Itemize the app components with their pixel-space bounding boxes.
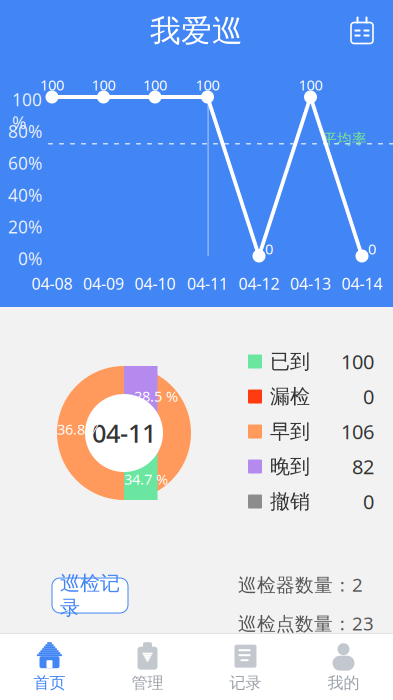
staticText: 巡检点数量：23 — [238, 611, 374, 636]
staticText: 100 — [298, 75, 322, 94]
button[interactable]: 管理 — [98, 637, 196, 699]
button[interactable]: 日历 — [349, 15, 393, 47]
button[interactable]: 首页 — [0, 637, 98, 699]
staticText: 平均率 — [322, 130, 367, 148]
staticText: 管理 — [131, 673, 163, 693]
button[interactable]: 记录 — [196, 637, 294, 699]
staticText: 100 — [143, 75, 167, 94]
staticText: 82 — [352, 453, 374, 480]
staticText: 早到 — [270, 419, 310, 444]
staticText: 已到 — [270, 349, 310, 374]
button[interactable]: 巡检记录 — [52, 578, 128, 613]
staticText: 漏检 — [270, 384, 310, 409]
staticText: 晚到 — [270, 454, 310, 479]
staticText: 04-11 — [92, 416, 156, 450]
staticText: 我的 — [327, 673, 359, 693]
staticText: 100 — [91, 75, 115, 94]
staticText: 36.8 % — [57, 419, 101, 439]
staticText: 巡检记录 — [60, 571, 120, 620]
staticText: 28.5 % — [134, 386, 178, 406]
staticText: 34.7 % — [124, 469, 168, 489]
staticText: 04-11 — [187, 273, 228, 294]
staticText: 0% — [18, 247, 42, 270]
staticText: 60% — [8, 152, 42, 175]
staticText: 首页 — [33, 673, 65, 693]
staticText: 我爱巡 — [150, 12, 243, 50]
staticText: 04-14 — [341, 273, 382, 294]
staticText: 100 — [40, 75, 64, 94]
button[interactable]: 我的 — [294, 637, 392, 699]
staticText: 0 — [368, 239, 376, 258]
staticText: 106 — [341, 418, 374, 445]
staticText: 04-12 — [238, 273, 279, 294]
staticText: 撤销 — [270, 489, 310, 514]
staticText: 记录 — [229, 673, 261, 693]
staticText: 100% — [12, 88, 42, 134]
staticText: 0 — [363, 488, 374, 515]
staticText: 04-10 — [134, 273, 175, 294]
staticText: 0 — [265, 239, 273, 258]
staticText: 20% — [8, 215, 42, 238]
staticText: 巡检器数量：2 — [238, 572, 363, 597]
staticText: 40% — [8, 183, 42, 206]
staticText: 04-08 — [31, 273, 72, 294]
staticText: 04-13 — [290, 273, 331, 294]
staticText: 80% — [8, 120, 42, 143]
staticText: 0 — [363, 383, 374, 410]
staticText: 04-09 — [83, 273, 124, 294]
staticText: 100 — [195, 75, 219, 94]
staticText: 100 — [341, 348, 374, 375]
